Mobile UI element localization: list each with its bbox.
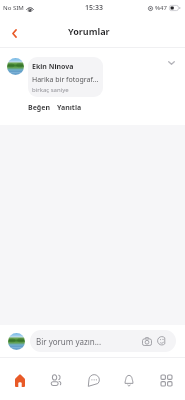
button[interactable]: Beğen [27,103,51,113]
button[interactable]: Home [3,362,37,398]
button[interactable]: Sticker [156,335,168,347]
staticText: Yorumlar [68,25,110,37]
button[interactable]: Ekin Ninova [28,57,103,97]
staticText: No SIM [3,4,24,12]
button[interactable]: Menu [149,362,183,398]
button[interactable]: Friends [39,362,73,398]
button[interactable]: Back [3,22,25,44]
button[interactable]: Camera [141,335,153,347]
staticText: birkaç saniye [32,86,69,94]
button[interactable]: Notifications [112,362,146,398]
button[interactable]: Bir yorum yazın... [30,330,176,352]
button[interactable]: Messages [76,362,110,398]
staticText: Ekin Ninova [32,62,74,72]
staticText: 15:33 [85,3,103,13]
button[interactable]: Yanıtla [56,103,83,113]
staticText: %47 [155,4,167,12]
staticText: Harika bir fotograf... [32,75,99,85]
button[interactable]: Expand comment [163,55,179,71]
staticText: Bir yorum yazın... [36,336,102,347]
